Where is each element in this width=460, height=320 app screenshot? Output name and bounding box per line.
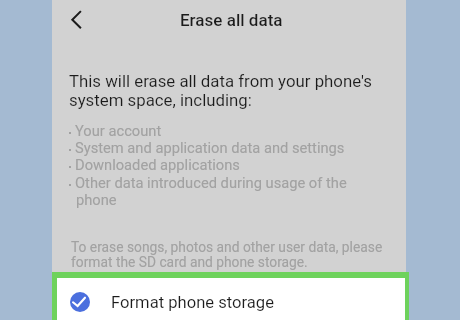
staticText: phone	[76, 191, 117, 208]
staticText: Downloaded applications	[75, 156, 240, 173]
staticText: Erase all data	[180, 10, 283, 30]
staticText: Your account	[75, 122, 162, 139]
staticText: Format phone storage	[111, 293, 274, 312]
staticText: This will erase all data from your phone…	[69, 71, 409, 110]
button[interactable]: Back	[57, 0, 97, 40]
button[interactable]: Format phone storage	[57, 278, 405, 320]
staticText: Other data introduced during usage of th…	[75, 174, 347, 191]
staticText: To erase songs, photos and other user da…	[71, 239, 411, 271]
staticText: System and application data and settings	[75, 139, 345, 156]
